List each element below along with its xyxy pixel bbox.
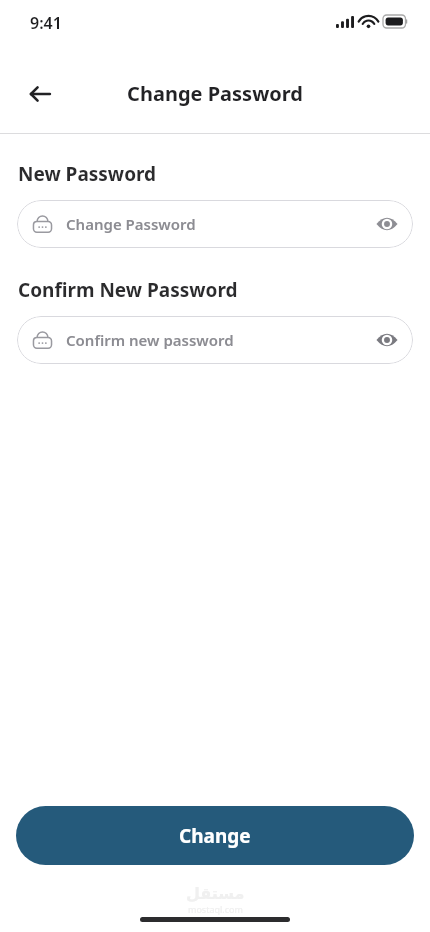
button[interactable]: Back: [18, 72, 62, 116]
staticText: Change Password: [66, 214, 367, 234]
staticText: 9:41: [30, 12, 62, 34]
button[interactable]: Show password: [367, 320, 407, 360]
staticText: Change Password: [127, 80, 303, 107]
button[interactable]: Change: [16, 806, 414, 865]
button[interactable]: Confirm new password: [17, 316, 413, 364]
staticText: مستقل: [186, 884, 245, 903]
button[interactable]: Change Password: [17, 200, 413, 248]
staticText: Confirm New Password: [18, 277, 238, 303]
staticText: mostaql.com: [188, 903, 243, 915]
button[interactable]: Show password: [367, 204, 407, 244]
staticText: Change: [179, 823, 251, 849]
staticText: Confirm new password: [66, 330, 367, 350]
staticText: New Password: [18, 161, 157, 187]
